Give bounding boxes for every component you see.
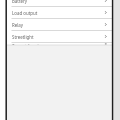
staticText: Battery [12,0,103,4]
other: Open Relay [103,22,108,27]
other: Open Load output [103,10,108,15]
button[interactable]: Load output [7,7,112,18]
button[interactable]: Battery [7,0,112,6]
staticText: Streetlight [12,34,103,40]
staticText: Relay [12,22,103,28]
other: Open Streetlight [103,34,108,39]
other: Open Battery [103,0,108,3]
other: Open Tx port function [103,43,108,45]
button[interactable]: Streetlight [7,31,112,42]
button[interactable]: Tx port function [7,43,112,45]
staticText: Tx port function [12,43,103,45]
staticText: Load output [12,10,103,16]
button[interactable]: Relay [7,19,112,30]
